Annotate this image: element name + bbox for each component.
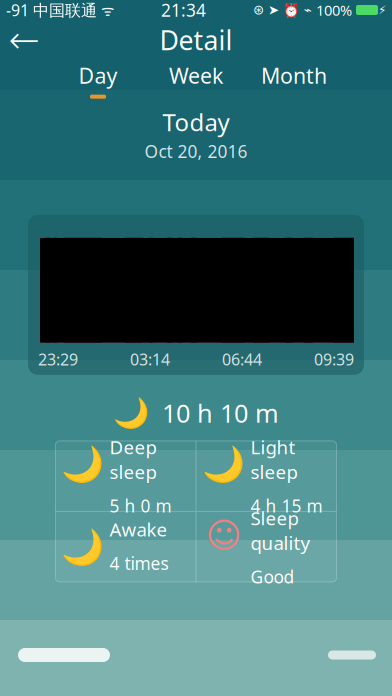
staticText: -91 中国联通 [6,0,97,21]
staticText: 03:14 [130,349,170,370]
staticText: 10 h 10 m [162,396,279,430]
staticText: ☺ [205,516,241,555]
staticText: Deep sleep [109,435,156,484]
staticText: 4 h 15 m [250,494,322,517]
staticText: 21:34 [161,0,206,21]
staticText: ← [8,19,39,61]
staticText: Detail [159,22,232,58]
staticText: Day [78,61,117,90]
staticText: ᯤ [97,0,114,20]
staticText: Month [261,61,327,90]
button[interactable]: 🌙 [55,512,195,582]
staticText: Light sleep [250,435,297,484]
staticText: Week [169,61,223,90]
button[interactable]: Back [0,20,48,60]
staticText: 5 h 0 m [109,494,171,517]
staticText: Sleep quality [250,506,310,555]
button[interactable]: 🌙 [55,441,195,511]
staticText: ⚡︎ [378,3,386,17]
staticText: Today [162,106,229,138]
staticText: 4 times [109,552,168,575]
staticText: 100% [312,0,356,20]
staticText: 🌙 [113,396,150,430]
staticText: ⊛ ➤ ⏰ ⌁ [253,2,312,18]
button[interactable]: ☺ [196,512,336,582]
button[interactable]: Week [147,60,245,100]
staticText: Oct 20, 2016 [144,140,247,163]
staticText: 🌙 [202,445,245,484]
staticText: 23:29 [38,349,78,370]
staticText: Good [250,565,294,588]
button[interactable]: 🌙 [196,441,336,511]
button[interactable]: Month [245,60,343,100]
staticText: 09:39 [314,349,354,370]
staticText: 06:44 [222,349,262,370]
staticText: Awake [109,517,167,542]
button[interactable]: Day [49,60,147,100]
staticText: 🌙 [61,445,104,484]
staticText: 🌙 [61,527,104,567]
